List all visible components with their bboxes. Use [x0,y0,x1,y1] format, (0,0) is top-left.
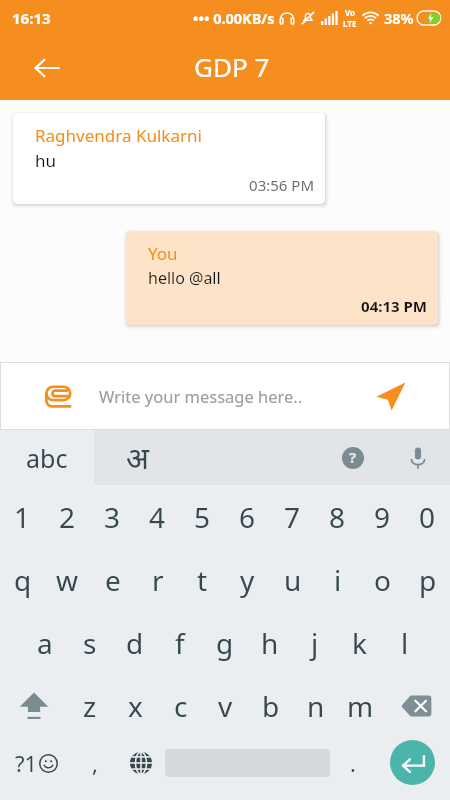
staticText: b [262,687,280,725]
button[interactable]: abc [0,430,94,485]
staticText: l [401,624,409,662]
button[interactable]: w [45,548,90,611]
staticText: c [174,687,188,725]
button[interactable]: z [67,674,113,737]
button[interactable]: t [180,548,225,611]
staticText: h [261,624,279,662]
button[interactable]: Back [25,46,69,90]
button[interactable]: Help [328,433,378,483]
button[interactable]: a [23,611,67,674]
button[interactable]: c [158,674,203,737]
staticText: r [152,561,164,599]
button[interactable]: Attach file [40,376,80,416]
staticText: a [37,624,53,662]
staticText: 9 [374,498,391,536]
button[interactable]: n [293,674,338,737]
button[interactable]: o [360,548,405,611]
button[interactable]: Change language [117,737,165,788]
staticText: w [56,561,79,599]
button[interactable]: 7 [270,485,315,548]
staticText: 04:13 PM [148,296,427,316]
staticText: 0 [419,498,436,536]
staticText: अ [126,437,149,478]
staticText: t [197,561,208,599]
button[interactable]: , [72,737,117,788]
button[interactable]: You [126,231,438,325]
button[interactable]: Space [165,737,330,788]
staticText: u [284,561,302,599]
button[interactable]: 6 [225,485,270,548]
button[interactable]: u [270,548,315,611]
button[interactable]: b [248,674,293,737]
staticText: z [83,687,97,725]
staticText: 2 [59,498,76,536]
button[interactable]: j [292,611,337,674]
staticText: 6 [239,498,256,536]
staticText: 3 [104,498,121,536]
staticText: n [307,687,325,725]
staticText: hu [35,149,57,172]
staticText: 7 [284,498,301,536]
button[interactable]: 8 [315,485,360,548]
staticText: 03:56 PM [35,175,314,195]
button[interactable]: k [337,611,382,674]
staticText: Vo [345,7,356,18]
button[interactable]: Voice input [393,433,443,483]
button[interactable]: m [338,674,383,737]
button[interactable]: अ [94,430,450,485]
staticText: g [216,624,234,662]
staticText: i [334,561,342,599]
staticText: x [128,687,143,725]
button[interactable]: . [330,737,375,788]
button[interactable]: 4 [135,485,180,548]
button[interactable]: g [202,611,247,674]
staticText: m [347,687,374,725]
staticText: j [311,624,319,662]
button[interactable]: 9 [360,485,405,548]
staticText: y [240,561,255,599]
button[interactable]: i [315,548,360,611]
button[interactable]: Symbols [0,737,72,788]
button[interactable]: d [112,611,157,674]
button[interactable]: h [247,611,292,674]
staticText: o [374,561,391,599]
button[interactable]: 1 [0,485,45,548]
staticText: 38% [384,8,414,28]
button[interactable]: r [135,548,180,611]
button[interactable]: 3 [90,485,135,548]
button[interactable]: f [157,611,202,674]
staticText: 1 [14,498,31,536]
staticText: ? [349,447,357,467]
staticText: 8 [329,498,346,536]
staticText: Raghvendra Kulkarni [35,124,202,147]
button[interactable]: Enter [375,737,450,788]
staticText: v [218,687,233,725]
staticText: f [175,624,185,662]
button[interactable]: y [225,548,270,611]
button[interactable]: Shift [0,674,67,737]
button[interactable]: q [0,548,45,611]
staticText: ?1 [15,748,38,778]
button[interactable]: 5 [180,485,225,548]
button[interactable]: e [90,548,135,611]
button[interactable]: 0 [405,485,450,548]
button[interactable]: v [203,674,248,737]
button[interactable]: p [405,548,450,611]
staticText: e [105,561,121,599]
button[interactable]: Raghvendra Kulkarni [13,113,325,204]
staticText: 16:13 [12,8,51,28]
staticText: You [148,242,178,265]
button[interactable]: x [113,674,158,737]
staticText: 4 [149,498,166,536]
staticText: p [419,561,437,599]
button[interactable]: 2 [45,485,90,548]
staticText: , [92,748,98,778]
staticText: LTE [343,18,357,29]
button[interactable]: Send [370,375,412,417]
staticText: s [83,624,97,662]
staticText: d [126,624,144,662]
button[interactable]: s [67,611,112,674]
button[interactable]: Backspace [383,674,450,737]
staticText: abc [26,441,68,475]
button[interactable]: l [382,611,427,674]
